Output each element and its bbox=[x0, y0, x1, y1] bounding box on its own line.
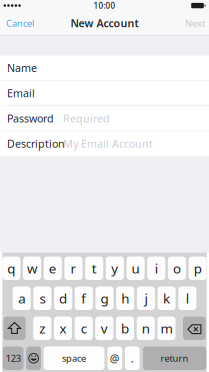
staticText: q bbox=[7, 259, 15, 277]
staticText: Cancel bbox=[6, 17, 34, 29]
staticText: Required bbox=[63, 111, 110, 126]
button[interactable]: . bbox=[125, 346, 140, 370]
button[interactable]: d bbox=[54, 286, 72, 310]
staticText: m bbox=[160, 319, 172, 337]
button[interactable]: c bbox=[75, 316, 93, 340]
staticText: b bbox=[121, 319, 129, 337]
staticText: z bbox=[39, 319, 45, 337]
staticText: p bbox=[194, 259, 202, 277]
button[interactable]: space bbox=[44, 346, 104, 370]
button[interactable]: return bbox=[143, 346, 206, 370]
button[interactable]: Next bbox=[177, 11, 209, 35]
staticText: k bbox=[163, 289, 170, 307]
staticText: @ bbox=[110, 351, 120, 365]
button[interactable]: n bbox=[137, 316, 155, 340]
button[interactable]: f bbox=[75, 286, 93, 310]
button[interactable]: Password bbox=[0, 106, 209, 131]
staticText: r bbox=[70, 259, 76, 277]
button[interactable]: Shift bbox=[3, 316, 26, 340]
staticText: w bbox=[27, 259, 37, 277]
button[interactable]: Delete bbox=[183, 316, 206, 340]
button[interactable]: r bbox=[64, 256, 82, 280]
staticText: s bbox=[39, 289, 45, 307]
button[interactable]: b bbox=[116, 316, 134, 340]
staticText: i bbox=[155, 259, 158, 277]
staticText: n bbox=[142, 319, 150, 337]
staticText: return bbox=[161, 352, 189, 364]
button[interactable]: e bbox=[44, 256, 62, 280]
button[interactable]: u bbox=[126, 256, 145, 280]
button[interactable]: Name bbox=[0, 55, 209, 80]
button[interactable]: j bbox=[137, 286, 155, 310]
staticText: u bbox=[132, 259, 140, 277]
staticText: . bbox=[131, 351, 134, 365]
staticText: My Email Account bbox=[63, 137, 153, 151]
staticText: 10:00 bbox=[93, 0, 115, 11]
staticText: v bbox=[101, 319, 108, 337]
button[interactable]: 123 bbox=[3, 346, 23, 370]
staticText: g bbox=[100, 289, 108, 307]
button[interactable]: Email bbox=[0, 81, 209, 106]
staticText: e bbox=[49, 259, 57, 277]
button[interactable]: v bbox=[95, 316, 113, 340]
staticText: h bbox=[121, 289, 129, 307]
button[interactable]: m bbox=[157, 316, 175, 340]
staticText: Email bbox=[7, 86, 35, 100]
button[interactable]: l bbox=[178, 286, 196, 310]
staticText: Description bbox=[7, 137, 65, 151]
button[interactable]: x bbox=[54, 316, 72, 340]
button[interactable]: a bbox=[13, 286, 31, 310]
staticText: Password bbox=[7, 111, 54, 126]
staticText: c bbox=[81, 319, 87, 337]
staticText: y bbox=[111, 259, 118, 277]
button[interactable]: i bbox=[147, 256, 165, 280]
staticText: Name bbox=[7, 61, 37, 75]
staticText: j bbox=[144, 289, 147, 307]
button[interactable]: g bbox=[95, 286, 114, 310]
button[interactable]: q bbox=[2, 256, 20, 280]
button[interactable]: p bbox=[189, 256, 207, 280]
staticText: l bbox=[186, 289, 189, 307]
staticText: 123 bbox=[6, 352, 21, 364]
staticText: New Account bbox=[70, 16, 138, 30]
staticText: t bbox=[92, 259, 97, 277]
button[interactable]: s bbox=[33, 286, 51, 310]
staticText: o bbox=[173, 259, 181, 277]
button[interactable]: t bbox=[85, 256, 103, 280]
staticText: a bbox=[18, 289, 25, 307]
button[interactable]: Cancel bbox=[0, 11, 42, 35]
button[interactable]: y bbox=[106, 256, 124, 280]
staticText: space bbox=[62, 352, 86, 364]
staticText: d bbox=[59, 289, 67, 307]
button[interactable]: z bbox=[33, 316, 51, 340]
staticText: f bbox=[81, 289, 86, 307]
button[interactable]: @ bbox=[107, 346, 122, 370]
staticText: Next bbox=[185, 17, 205, 29]
button[interactable]: Description bbox=[0, 131, 209, 156]
button[interactable]: o bbox=[168, 256, 186, 280]
staticText: x bbox=[59, 319, 66, 337]
button[interactable]: Emoji bbox=[26, 346, 41, 370]
button[interactable]: k bbox=[158, 286, 176, 310]
button[interactable]: h bbox=[116, 286, 134, 310]
button[interactable]: w bbox=[23, 256, 41, 280]
